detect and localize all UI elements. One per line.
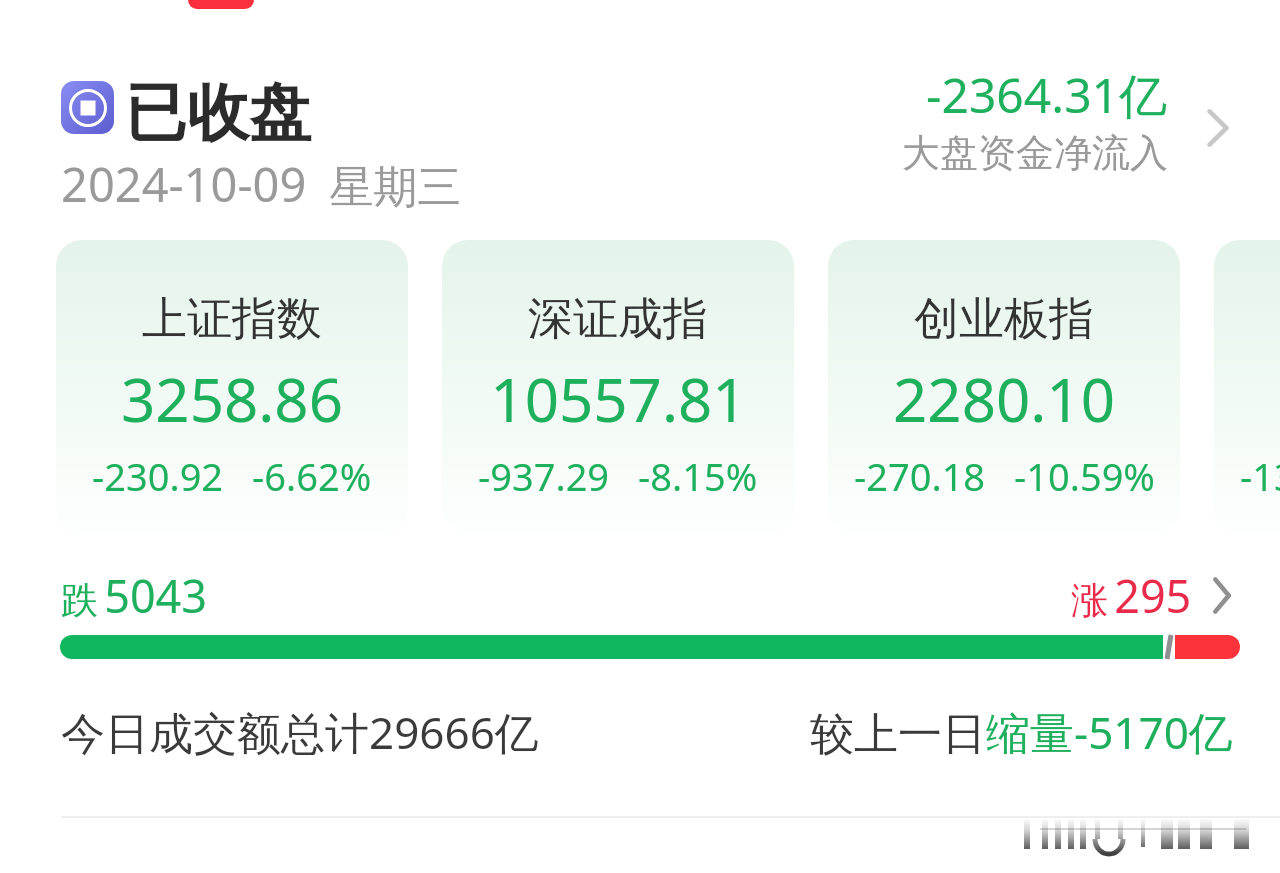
other: Fund flow details xyxy=(1208,110,1228,146)
staticText: 2280.10 xyxy=(893,358,1115,440)
staticText: -937.29 xyxy=(478,450,610,502)
staticText: 跌 5043 xyxy=(61,565,208,626)
staticText: -6.62% xyxy=(252,450,372,502)
button[interactable]: 上证指数 xyxy=(56,240,408,534)
staticText: -2364.31亿 xyxy=(926,62,1168,128)
staticText: 今日成交额总计29666亿 xyxy=(61,702,539,762)
staticText: 涨 295 xyxy=(1071,565,1192,626)
staticText: 大盘资金净流入 xyxy=(902,129,1168,177)
staticText: 10557.81 xyxy=(490,358,747,440)
staticText: 2024-10-09 星期三 xyxy=(61,152,462,216)
staticText: -230.92 xyxy=(92,450,224,502)
staticText: -10.59% xyxy=(1014,450,1155,502)
staticText: -270.18 xyxy=(854,450,986,502)
button[interactable]: 科创50 xyxy=(1214,240,1280,534)
staticText: 较上一日缩量-5170亿 xyxy=(810,702,1233,762)
staticText: 3258.86 xyxy=(121,358,343,440)
button[interactable]: Market closed xyxy=(61,81,114,134)
staticText: 上证指数 xyxy=(142,291,322,348)
other: Advancers and decliners xyxy=(1214,578,1230,613)
button[interactable]: 跌 5043 xyxy=(61,565,1230,626)
button[interactable]: -2364.31亿 xyxy=(0,62,1228,177)
button[interactable]: 深证成指 xyxy=(442,240,794,534)
staticText: -132.38 xyxy=(1240,450,1280,502)
button[interactable]: 创业板指 xyxy=(828,240,1180,534)
staticText: -8.15% xyxy=(638,450,758,502)
staticText: 创业板指 xyxy=(914,291,1094,348)
staticText: 深证成指 xyxy=(528,291,708,348)
staticText: 已收盘 xyxy=(125,74,311,152)
